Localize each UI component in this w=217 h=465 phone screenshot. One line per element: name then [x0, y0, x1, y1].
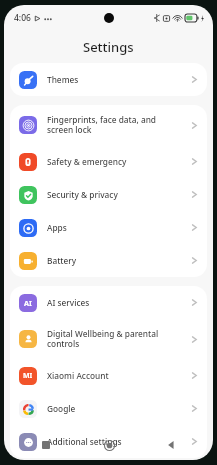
staticText: Xiaomi Account [47, 370, 165, 381]
button[interactable]: Home [89, 431, 129, 459]
button[interactable]: Fingerprints, face data, and screen lock [10, 105, 207, 145]
staticText: Google [47, 403, 165, 414]
button[interactable]: MI [10, 359, 207, 392]
button[interactable]: Battery [10, 244, 207, 277]
button[interactable]: Security & privacy [10, 178, 207, 211]
staticText: Digital Wellbeing & parental controls [47, 328, 165, 350]
staticText: Safety & emergency [47, 156, 165, 167]
button[interactable]: Recent apps [26, 431, 66, 459]
button[interactable]: Additional settings [10, 425, 207, 458]
button[interactable]: Safety & emergency [10, 145, 207, 178]
staticText: Fingerprints, face data, and screen lock [47, 114, 165, 136]
staticText: MI [23, 371, 33, 381]
button[interactable]: Digital Wellbeing & parental controls [10, 319, 207, 359]
staticText: Security & privacy [47, 189, 165, 200]
button[interactable]: Back [151, 431, 191, 459]
button[interactable]: Google [10, 392, 207, 425]
staticText: 4:06 [14, 12, 31, 24]
staticText: Themes [47, 74, 165, 85]
staticText: Additional settings [47, 436, 165, 447]
button[interactable]: Themes [10, 63, 207, 96]
button[interactable]: AI [10, 286, 207, 319]
staticText: Apps [47, 222, 165, 233]
button[interactable]: Apps [10, 211, 207, 244]
staticText: AI [24, 298, 32, 308]
staticText: AI services [47, 297, 165, 308]
staticText: Battery [47, 255, 165, 266]
staticText: Settings [83, 38, 134, 56]
